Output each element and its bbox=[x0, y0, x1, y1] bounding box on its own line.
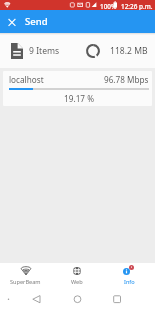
staticText: 100% bbox=[100, 2, 117, 11]
button[interactable]: localhost bbox=[3, 71, 152, 106]
staticText: localhost bbox=[9, 74, 44, 85]
staticText: 96.78 Mbps bbox=[104, 74, 149, 85]
button[interactable]: SuperBeam bbox=[0, 263, 51, 295]
staticText: 9 Items bbox=[29, 45, 60, 57]
staticText: 19.17 % bbox=[9, 93, 149, 104]
staticText: Send bbox=[25, 15, 48, 28]
staticText: Info bbox=[124, 278, 135, 286]
button[interactable]: Web bbox=[51, 263, 103, 295]
button[interactable]: Close bbox=[0, 10, 24, 33]
staticText: 118.2 MB bbox=[110, 45, 148, 57]
button[interactable]: Info bbox=[103, 263, 155, 295]
staticText: 12:26 p.m. bbox=[121, 2, 153, 11]
staticText: SuperBeam bbox=[10, 278, 41, 286]
button[interactable]: 9 Items bbox=[0, 33, 155, 68]
staticText: Web bbox=[71, 278, 83, 286]
